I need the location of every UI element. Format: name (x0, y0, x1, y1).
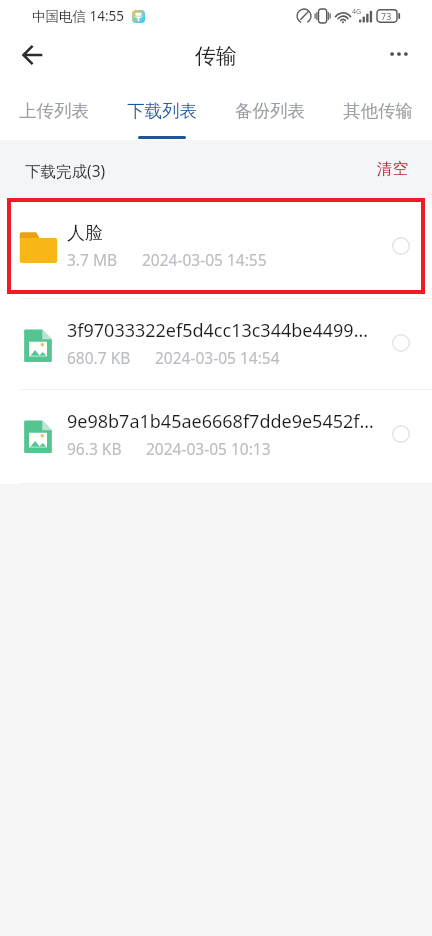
button[interactable]: 3f97033322ef5d4cc13c344be44995… (0, 299, 432, 389)
staticText: 4G (352, 7, 362, 17)
staticText: 下载列表 (127, 100, 197, 122)
staticText: 3f97033322ef5d4cc13c344be44995… (67, 318, 378, 343)
button[interactable]: Back (11, 33, 55, 77)
button[interactable]: 下载列表 (108, 86, 216, 140)
button[interactable]: 上传列表 (0, 86, 108, 140)
button[interactable]: 备份列表 (216, 86, 324, 140)
button[interactable]: 人脸 (0, 198, 432, 298)
staticText: 中国电信 14:55 (32, 7, 125, 25)
staticText: 上传列表 (19, 100, 89, 122)
staticText: 备份列表 (235, 100, 305, 122)
staticText: 2024-03-05 14:54 (155, 347, 280, 368)
button[interactable]: Select (386, 231, 416, 261)
staticText: 73 (381, 10, 392, 22)
button[interactable]: Select (386, 419, 416, 449)
staticText: 96.3 KB (67, 438, 122, 459)
button[interactable]: Select (386, 328, 416, 358)
staticText: 清空 (377, 159, 408, 179)
staticText: 传输 (195, 43, 237, 69)
staticText: 下载完成(3) (25, 160, 106, 181)
staticText: 2024-03-05 10:13 (146, 438, 271, 459)
staticText: 其他传输 (343, 100, 413, 122)
button[interactable]: 其他传输 (324, 86, 432, 140)
staticText: 3.7 MB (67, 249, 118, 270)
staticText: 9e98b7a1b45ae6668f7dde9e5452f0… (67, 409, 378, 434)
button[interactable]: More options (377, 32, 421, 76)
staticText: 680.7 KB (67, 347, 131, 368)
staticText: 人脸 (67, 222, 103, 245)
button[interactable]: 9e98b7a1b45ae6668f7dde9e5452f0… (0, 390, 432, 483)
staticText: 2024-03-05 14:55 (142, 249, 267, 270)
button[interactable]: 清空 (373, 153, 412, 185)
